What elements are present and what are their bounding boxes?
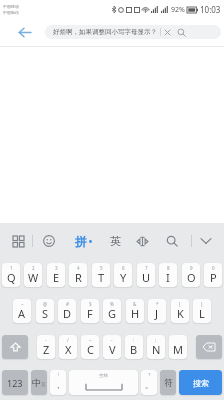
staticText: 。 (145, 380, 153, 390)
staticText: I (166, 270, 170, 285)
staticText: C (87, 342, 94, 357)
staticText: P (210, 270, 217, 285)
staticText: % (110, 301, 114, 307)
staticText: O (187, 270, 196, 285)
staticText: 英 (41, 382, 46, 388)
staticText: ( (179, 301, 181, 307)
button[interactable]: 搜索 (179, 370, 222, 395)
staticText: 拼 (75, 234, 87, 249)
staticText: * (156, 301, 159, 307)
button[interactable]: 123 (2, 370, 28, 395)
button[interactable]: Move cursor (132, 231, 152, 251)
staticText: 8 (167, 265, 170, 271)
button[interactable]: * (148, 299, 166, 323)
staticText: ~ (89, 337, 92, 343)
staticText: 中国移动 (3, 4, 19, 9)
staticText: 0 (212, 265, 215, 271)
staticText: N (152, 342, 161, 357)
button[interactable]: 符 (160, 370, 176, 395)
button[interactable]: : (125, 335, 143, 359)
button[interactable]: 7 (137, 263, 155, 287)
staticText: 2 (32, 265, 35, 271)
staticText: / (67, 337, 69, 343)
staticText: ) (201, 301, 203, 307)
button[interactable]: 6 (114, 263, 132, 287)
staticText: R (75, 270, 82, 285)
staticText: 英 (110, 234, 121, 248)
staticText: 中国电信 (3, 10, 19, 15)
staticText: K (177, 306, 184, 321)
button[interactable]: Backspace (196, 335, 222, 359)
button[interactable]: ; (147, 335, 165, 359)
button[interactable]: 9 (182, 263, 200, 287)
staticText: M (173, 342, 183, 357)
button[interactable]: - (37, 335, 55, 359)
button[interactable]: Search (174, 25, 189, 39)
button[interactable]: - (103, 335, 121, 359)
staticText: F (87, 306, 93, 321)
staticText: : (133, 337, 135, 343)
button[interactable]: 1 (2, 263, 20, 287)
staticText: X (65, 342, 72, 357)
staticText: - (111, 337, 113, 343)
staticText: Q (7, 270, 16, 285)
staticText: 3 (55, 265, 58, 271)
button[interactable]: 5 (92, 263, 110, 287)
staticText: 10:03 (200, 4, 221, 15)
button[interactable]: % (103, 299, 121, 323)
staticText: L (199, 306, 205, 321)
button[interactable]: ( (171, 299, 189, 323)
staticText: 4 (77, 265, 80, 271)
staticText: - (45, 337, 47, 343)
staticText: 6 (122, 265, 125, 271)
button[interactable]: ！ (50, 370, 66, 395)
staticText: ~ (21, 301, 24, 307)
button[interactable]: ) (193, 299, 211, 323)
staticText: Z (43, 342, 50, 357)
button[interactable]: 2 (24, 263, 42, 287)
button[interactable]: 中 (31, 370, 47, 395)
staticText: 中 (32, 377, 41, 388)
staticText: A (18, 306, 26, 321)
button[interactable]: M (169, 335, 187, 359)
staticText: @ (43, 301, 48, 307)
staticText: ， (54, 380, 62, 390)
button[interactable]: Search (162, 231, 182, 251)
staticText: 空格 (99, 373, 108, 379)
button[interactable]: ？ (141, 370, 157, 395)
staticText: ; (155, 337, 157, 343)
button[interactable]: 4 (69, 263, 87, 287)
button[interactable]: @ (36, 299, 54, 323)
button[interactable]: Shift (2, 335, 28, 359)
button[interactable]: Keyboard layouts (8, 231, 28, 251)
staticText: $ (89, 301, 92, 307)
button[interactable]: ~ (81, 335, 99, 359)
staticText: U (142, 270, 151, 285)
button[interactable]: # (58, 299, 76, 323)
staticText: J (155, 306, 159, 321)
button[interactable]: Space (69, 370, 138, 395)
staticText: 7 (145, 265, 148, 271)
staticText: 好烦啊，如果调整回小写字母显示？ (53, 28, 157, 36)
staticText: Y (120, 270, 127, 285)
button[interactable]: 8 (159, 263, 177, 287)
button[interactable]: Clear (161, 26, 174, 39)
button[interactable]: 拼 (75, 234, 92, 249)
button[interactable]: 0 (204, 263, 222, 287)
button[interactable]: 英 (110, 234, 121, 248)
staticText: S (42, 306, 49, 321)
button[interactable]: ~ (13, 299, 31, 323)
staticText: B (130, 342, 138, 357)
button[interactable]: & (126, 299, 144, 323)
button[interactable]: 好烦啊，如果调整回小写字母显示？ (45, 25, 221, 39)
staticText: 搜索 (193, 378, 209, 388)
staticText: D (63, 306, 72, 321)
button[interactable]: Hide keyboard (196, 231, 216, 251)
button[interactable]: $ (81, 299, 99, 323)
button[interactable]: Emoji (39, 231, 59, 251)
button[interactable]: 3 (47, 263, 65, 287)
button[interactable]: / (59, 335, 77, 359)
staticText: H (131, 306, 140, 321)
staticText: 92% (171, 5, 185, 15)
button[interactable]: Back (13, 21, 35, 43)
